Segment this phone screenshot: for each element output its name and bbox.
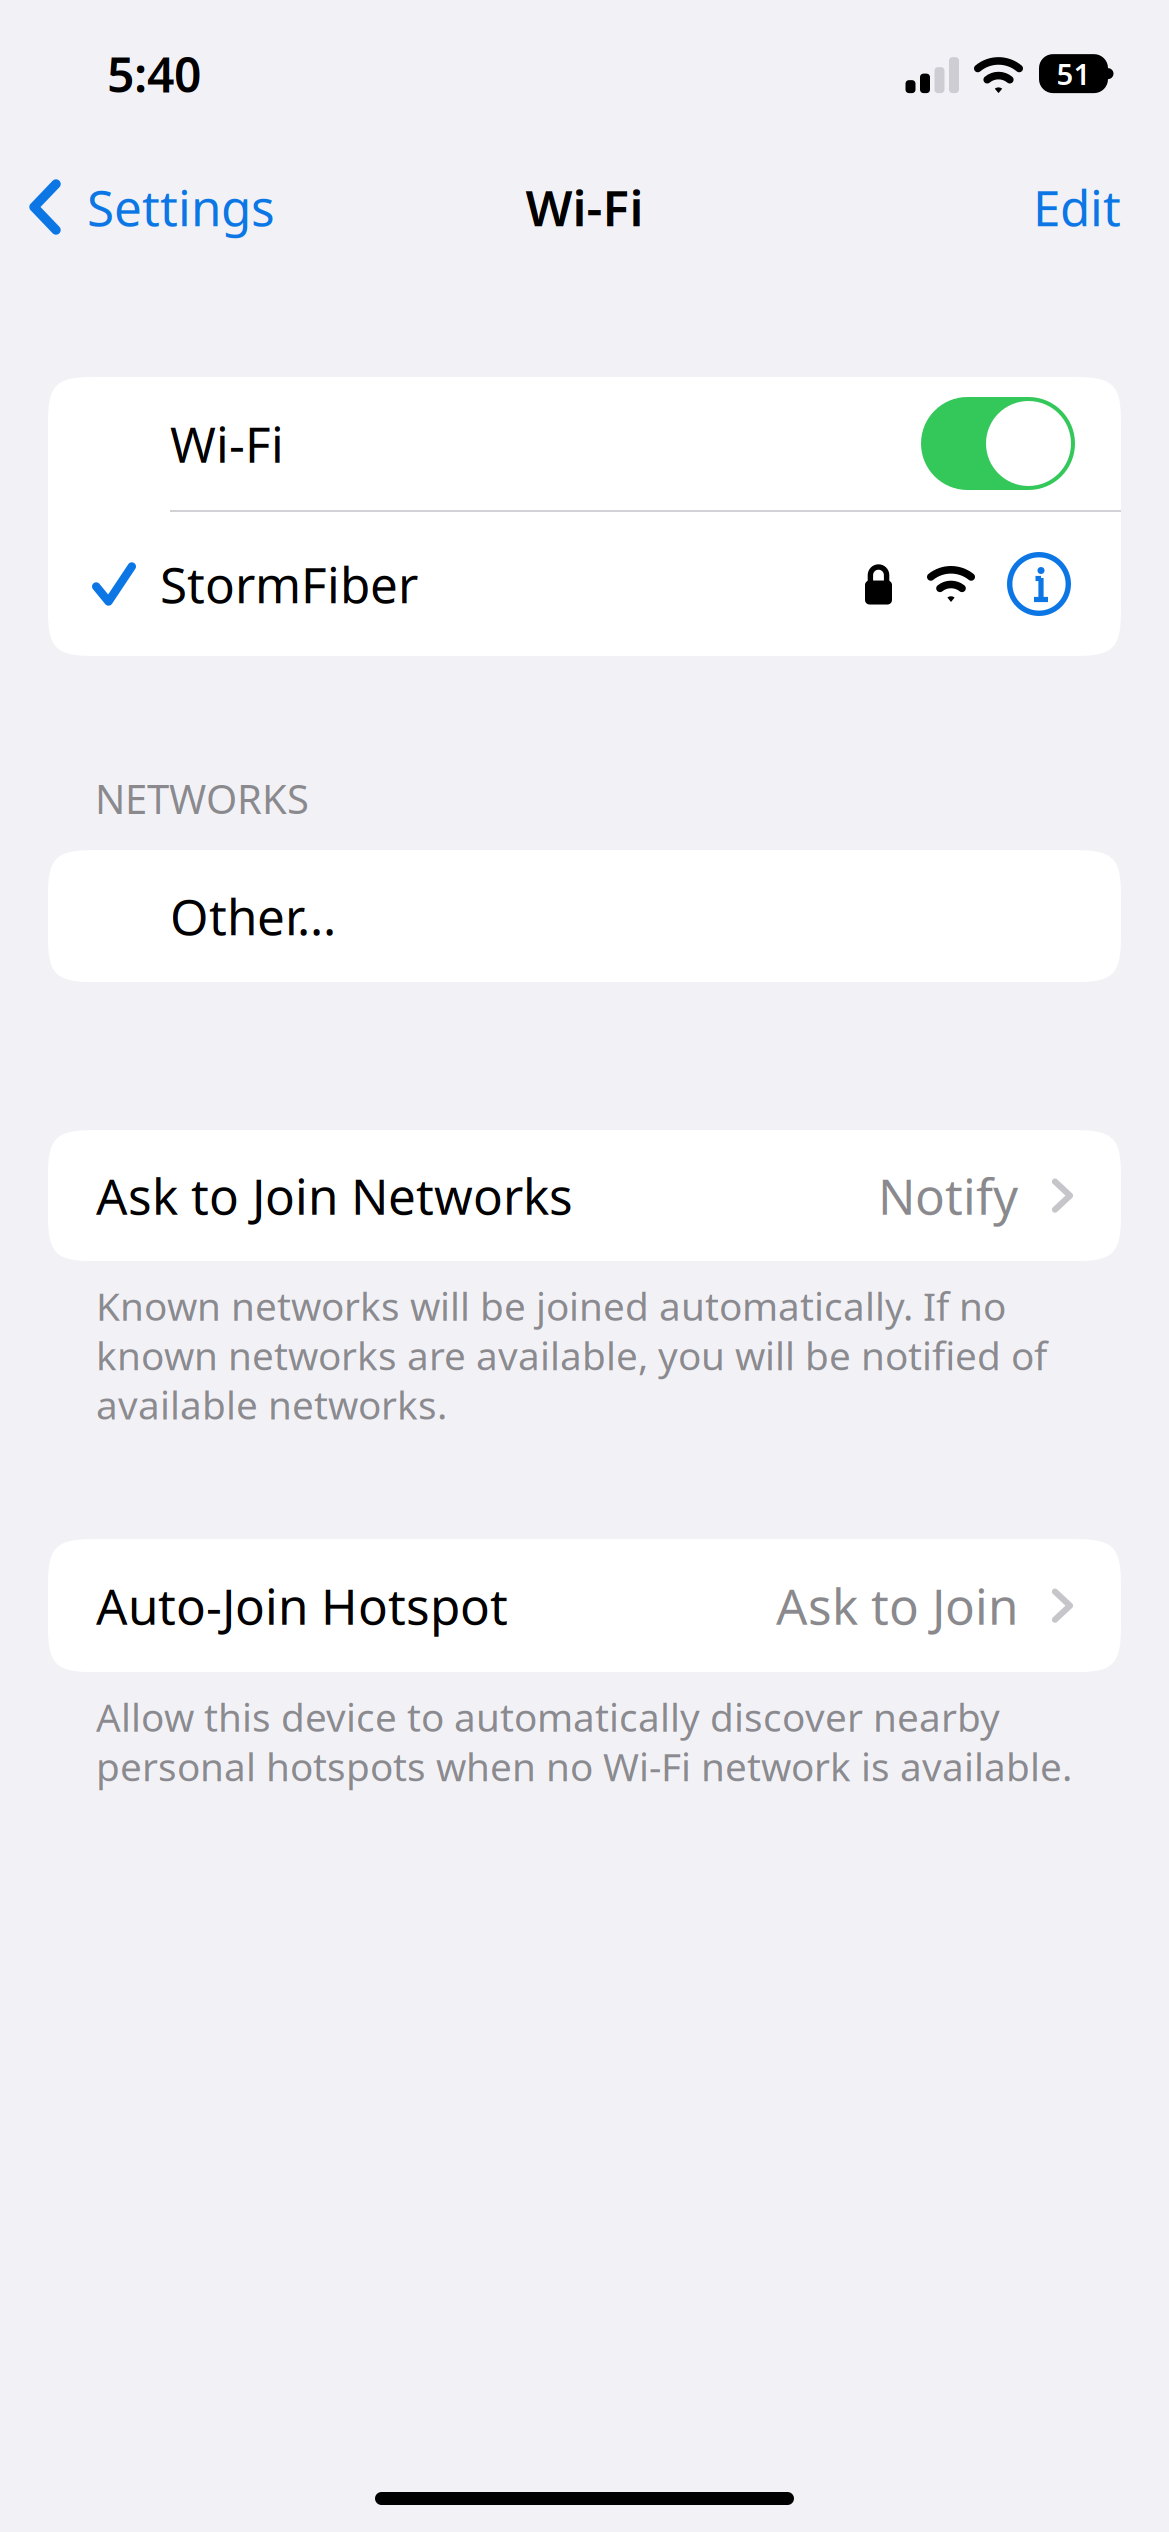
staticText: Ask to Join [776,1573,1018,1638]
button[interactable]: Other... [48,850,1121,982]
button[interactable]: Auto-Join Hotspot [48,1539,1121,1672]
staticText: NETWORKS [95,772,309,825]
button[interactable]: More info about StormFiber [975,512,1121,656]
staticText: StormFiber [160,551,418,617]
button[interactable]: Settings [0,159,299,255]
staticText: Wi-Fi [170,411,284,476]
button[interactable]: Edit [1003,159,1169,255]
staticText: Notify [878,1163,1018,1228]
staticText: Other... [170,883,336,949]
button[interactable]: Ask to Join Networks [48,1130,1121,1261]
staticText: Ask to Join Networks [96,1163,573,1228]
staticText: Settings [87,174,275,240]
staticText: Wi-Fi [525,174,643,240]
staticText: Allow this device to automatically disco… [96,1691,1072,1792]
staticText: 51 [1056,54,1090,93]
button[interactable]: StormFiber [48,512,975,656]
staticText: Auto-Join Hotspot [96,1573,508,1638]
staticText: Edit [1033,174,1121,240]
staticText: 5:40 [107,42,201,106]
button[interactable]: Wi-Fi [48,377,1121,510]
staticText: Known networks will be joined automatica… [96,1280,1047,1430]
